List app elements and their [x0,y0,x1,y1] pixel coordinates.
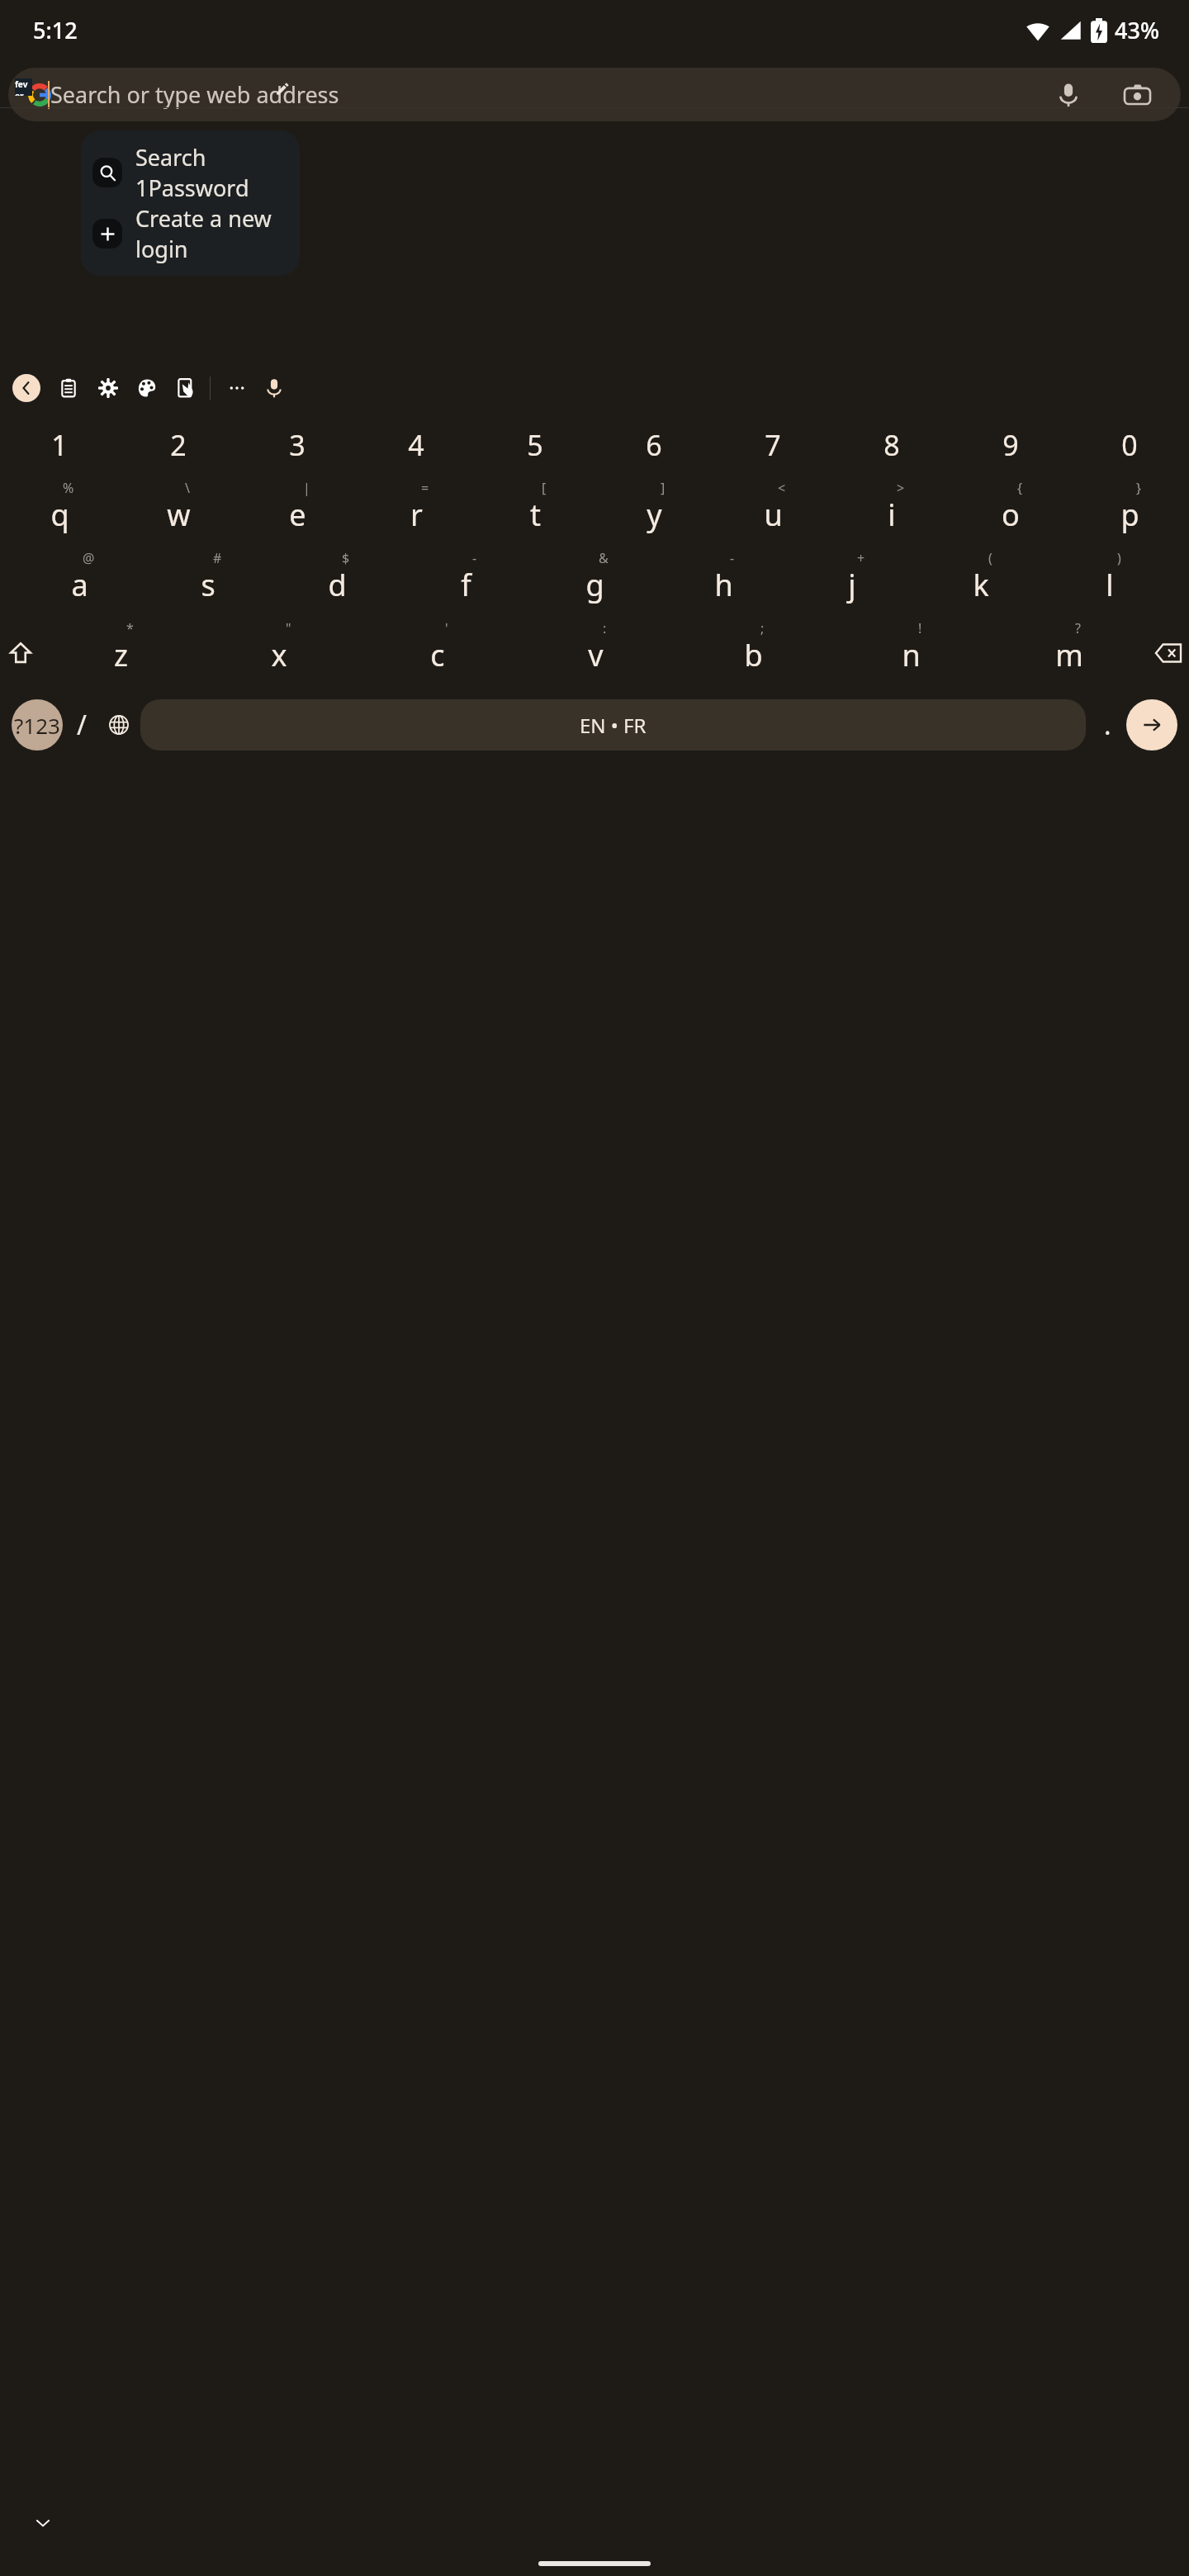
staticText: \ [185,479,190,497]
button[interactable]: Hide keyboard [30,2510,56,2536]
button[interactable]: i [832,477,951,547]
button[interactable]: New tab [272,79,292,99]
button[interactable]: w [119,477,238,547]
button[interactable]: 0 [1070,413,1189,477]
button[interactable]: l [1045,547,1174,618]
staticText: 9 [1002,426,1019,464]
button[interactable]: p [1070,477,1189,547]
staticText: z [114,635,128,675]
button[interactable]: 4 [357,413,476,477]
button[interactable]: z [41,618,200,688]
button[interactable]: 3 [238,413,357,477]
button[interactable]: Backspace [1148,618,1189,688]
button[interactable]: One-handed mode [173,374,201,402]
button[interactable]: / [63,688,100,762]
button[interactable]: q [0,477,119,547]
staticText: n [902,635,921,675]
staticText: 43% [1115,15,1159,45]
staticText: e [289,495,306,535]
button[interactable]: 9 [951,413,1070,477]
staticText: * [126,619,134,637]
staticText: ? [1075,619,1081,637]
button[interactable]: Settings [94,374,122,402]
button[interactable]: ?123 [12,699,63,751]
staticText: & [599,549,609,567]
button[interactable]: 5 [476,413,594,477]
button[interactable]: t [476,477,594,547]
button[interactable]: y [594,477,713,547]
button[interactable]: 7 [713,413,832,477]
button[interactable]: c [358,618,517,688]
button[interactable]: u [713,477,832,547]
button[interactable]: 1 [0,413,119,477]
button[interactable]: EN • FR [140,699,1086,751]
button[interactable]: d [272,547,401,618]
staticText: # [213,549,222,567]
staticText: : [603,619,607,637]
staticText: 5 [527,426,543,464]
button[interactable]: g [530,547,659,618]
staticText: l [1106,565,1114,605]
button[interactable]: Voice search [1049,76,1087,114]
button[interactable]: r [357,477,476,547]
button[interactable]: 6 [594,413,713,477]
staticText: k [973,565,989,605]
button[interactable]: b [675,618,832,688]
staticText: y [647,495,662,535]
button[interactable]: fever [15,78,32,96]
button[interactable]: h [659,547,788,618]
button[interactable]: More options [223,374,251,402]
staticText: 4 [408,426,424,464]
button[interactable]: Enter [1126,699,1177,751]
staticText: Search or type web address [50,79,339,110]
button[interactable]: s [144,547,272,618]
staticText: = [421,479,429,497]
button[interactable]: Search with camera [1118,76,1156,114]
staticText: o [1002,495,1020,535]
staticText: 8 [883,426,900,464]
staticText: j [848,565,856,605]
staticText: ?123 [14,711,60,740]
staticText: { [1017,479,1023,497]
button[interactable]: j [788,547,917,618]
staticText: Create a new login [135,203,300,264]
staticText: 1 [51,426,68,464]
staticText: > [897,479,905,497]
staticText: ' [445,619,448,637]
button[interactable]: Search 1Password [81,142,300,203]
staticText: + [857,549,865,567]
button[interactable]: Voice input [260,374,288,402]
button[interactable]: o [951,477,1070,547]
staticText: 7 [765,426,781,464]
button[interactable]: . [1089,688,1126,762]
staticText: [ [542,479,547,497]
button[interactable]: m [990,618,1148,688]
button[interactable]: e [238,477,357,547]
staticText: x [271,635,287,675]
button[interactable]: k [917,547,1045,618]
button[interactable]: Clipboard [54,374,83,402]
staticText: s [201,565,216,605]
button[interactable]: x [200,618,358,688]
button[interactable]: v [517,618,675,688]
staticText: - [730,549,735,567]
button[interactable]: 8 [832,413,951,477]
staticText: | [303,479,310,497]
button[interactable]: Create a new login [81,203,300,264]
button[interactable]: Search or type web address [8,68,1181,121]
staticText: ] [661,479,666,497]
button[interactable]: Back [12,374,40,402]
button[interactable]: Shift [0,618,41,688]
button[interactable]: f [401,547,530,618]
button[interactable]: Change language [100,688,137,762]
button[interactable]: a [15,547,144,618]
button[interactable]: 2 [119,413,238,477]
staticText: 2 [170,426,187,464]
staticText: g [585,565,604,605]
staticText: ) [1117,549,1121,567]
button[interactable]: n [832,618,990,688]
staticText: 0 [1121,426,1138,464]
staticText: 3 [289,426,306,464]
staticText: i [888,495,896,535]
button[interactable]: Themes [133,374,161,402]
